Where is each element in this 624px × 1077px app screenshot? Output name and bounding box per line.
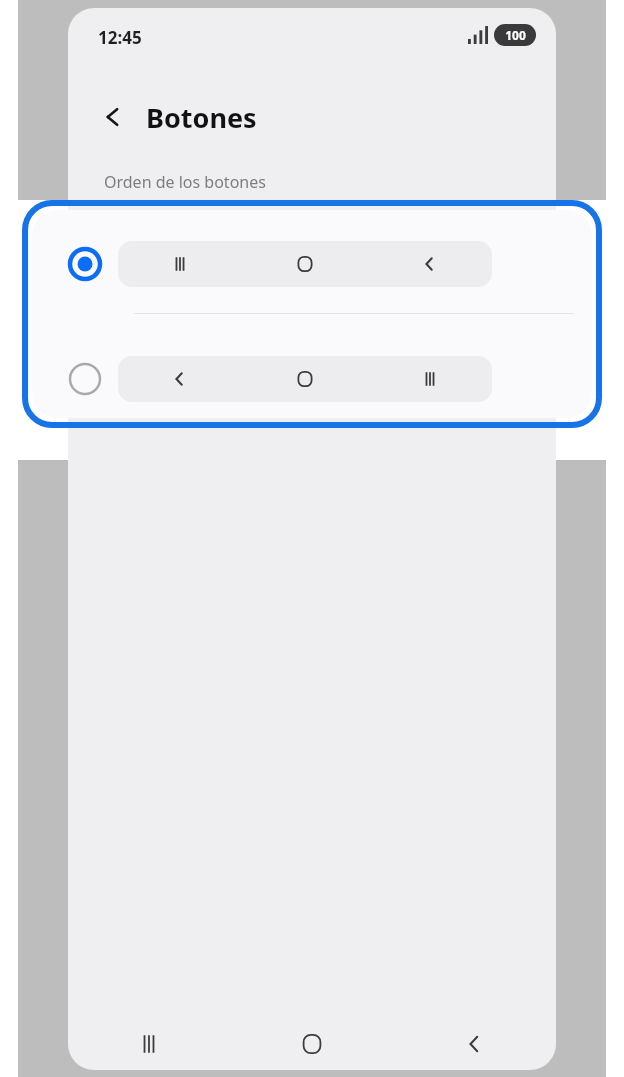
staticText: Botones xyxy=(146,99,257,136)
button[interactable]: Recents xyxy=(68,1018,230,1070)
button[interactable] xyxy=(32,236,592,292)
button[interactable]: Home xyxy=(230,1018,393,1070)
staticText: 100 xyxy=(505,27,526,43)
button[interactable]: Back xyxy=(393,1018,556,1070)
button[interactable]: Back xyxy=(92,95,136,139)
staticText: 12:45 xyxy=(98,26,142,49)
staticText: Orden de los botones xyxy=(104,171,266,193)
button[interactable] xyxy=(32,351,592,407)
